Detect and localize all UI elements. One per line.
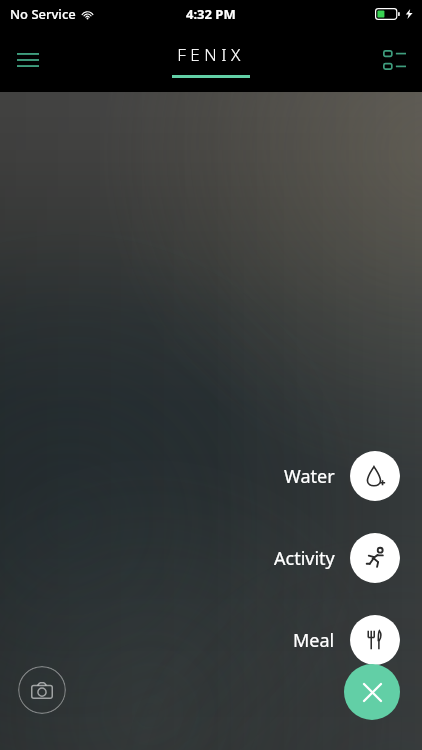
- button[interactable]: Menu: [0, 32, 56, 88]
- button[interactable]: Camera: [18, 666, 66, 714]
- button[interactable]: Activity: [262, 531, 400, 585]
- button[interactable]: Close: [344, 664, 400, 720]
- button[interactable]: View options: [366, 32, 422, 88]
- staticText: 4:32 PM: [186, 5, 236, 23]
- staticText: No Service: [10, 5, 76, 23]
- button[interactable]: Water: [272, 449, 400, 503]
- button[interactable]: Meal: [281, 613, 400, 667]
- staticText: Water: [284, 464, 335, 489]
- staticText: Activity: [274, 546, 335, 571]
- staticText: FENIX: [177, 43, 245, 66]
- staticText: Meal: [293, 628, 335, 653]
